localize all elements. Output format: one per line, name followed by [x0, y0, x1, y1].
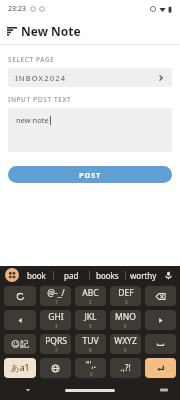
- staticText: 6: [124, 323, 127, 329]
- staticText: worthy: [130, 270, 157, 281]
- staticText: new note: [16, 115, 49, 125]
- staticText: New Note: [21, 23, 81, 39]
- staticText: MNO: [115, 311, 136, 323]
- button[interactable]: enter: [145, 358, 176, 378]
- button[interactable]: book: [19, 266, 53, 284]
- button[interactable]: undo: [4, 286, 36, 306]
- staticText: 5: [89, 323, 92, 329]
- button[interactable]: POST: [8, 166, 172, 183]
- button[interactable]: globe: [40, 358, 71, 378]
- staticText: 3: [125, 299, 128, 305]
- button[interactable]: worthy: [126, 266, 161, 284]
- staticText: POST: [79, 170, 102, 180]
- button[interactable]: space: [145, 334, 176, 354]
- button[interactable]: right: [145, 310, 176, 330]
- staticText: .,?!: [120, 362, 131, 374]
- button[interactable]: TUV: [75, 334, 106, 354]
- button[interactable]: ☺記: [4, 334, 36, 354]
- button[interactable]: MNO: [110, 310, 141, 330]
- button[interactable]: left: [4, 310, 36, 330]
- staticText: TUV: [82, 335, 99, 347]
- staticText: 23:23: [8, 4, 26, 14]
- staticText: SELECT PAGE: [8, 55, 55, 64]
- button[interactable]: Switch keyboard: [158, 384, 170, 396]
- button[interactable]: WXYZ: [110, 334, 141, 354]
- button[interactable]: Keyboard settings: [5, 268, 19, 282]
- button[interactable]: DEF: [110, 286, 141, 306]
- staticText: 2: [89, 299, 92, 305]
- staticText: INBOX2024: [15, 73, 67, 83]
- staticText: DEF: [118, 287, 134, 299]
- staticText: 7: [55, 347, 58, 353]
- button[interactable]: GHI: [40, 310, 71, 330]
- button[interactable]: .,?!: [110, 358, 141, 378]
- staticText: PQRS: [45, 335, 67, 347]
- button[interactable]: @-_/: [40, 286, 71, 306]
- staticText: 4: [55, 323, 58, 329]
- button[interactable]: new note: [8, 108, 172, 152]
- staticText: JKL: [84, 311, 97, 323]
- staticText: INPUT POST TEXT: [8, 95, 72, 104]
- staticText: books: [96, 270, 119, 281]
- staticText: "',.: [86, 359, 96, 371]
- staticText: book: [27, 270, 46, 281]
- button[interactable]: del: [145, 286, 176, 306]
- staticText: 9: [124, 347, 127, 353]
- button[interactable]: Voice input: [161, 268, 175, 282]
- button[interactable]: INBOX2024: [8, 68, 172, 87]
- button[interactable]: books: [90, 266, 125, 284]
- staticText: あa1: [11, 362, 30, 374]
- staticText: 1: [55, 299, 58, 305]
- button[interactable]: あa1: [4, 358, 36, 378]
- staticText: ABC: [82, 287, 99, 299]
- staticText: 0: [90, 371, 93, 377]
- staticText: ☺記: [11, 339, 29, 350]
- staticText: WXYZ: [114, 335, 137, 347]
- staticText: 8: [89, 347, 92, 353]
- staticText: @-_/: [47, 287, 65, 299]
- button[interactable]: ABC: [75, 286, 106, 306]
- button[interactable]: JKL: [75, 310, 106, 330]
- staticText: GHI: [48, 311, 64, 323]
- staticText: pad: [64, 270, 79, 281]
- button[interactable]: "',.: [75, 358, 106, 378]
- button[interactable]: pad: [54, 266, 89, 284]
- button[interactable]: PQRS: [40, 334, 71, 354]
- button[interactable]: Hide keyboard: [22, 384, 34, 396]
